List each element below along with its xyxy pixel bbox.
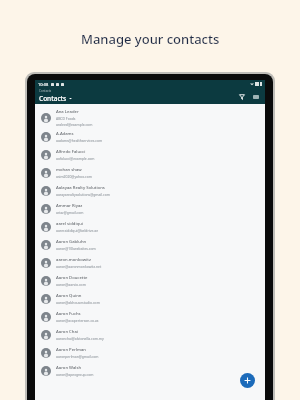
button[interactable]: Ammar Riyaz xyxy=(35,200,265,218)
staticText: Aaron Gabluhn xyxy=(56,239,87,245)
staticText: Aaron Walsh xyxy=(56,365,82,371)
staticText: aaron@apexgroup.com xyxy=(56,372,94,377)
button[interactable]: mohan shaw xyxy=(35,164,265,182)
button[interactable]: Alfredo Falucci xyxy=(35,146,265,164)
staticText: aaron@abhousestudio.com xyxy=(56,300,100,305)
button[interactable]: Aaron Perlman xyxy=(35,344,265,362)
staticText: araleed@example.com xyxy=(56,122,93,127)
staticText: Aaron Fuchs xyxy=(56,311,81,317)
staticText: Alfredo Falucci xyxy=(56,149,86,155)
staticText: Contacts xyxy=(39,89,52,93)
button[interactable]: Filter xyxy=(236,91,247,102)
staticText: aaron@acaperterson.co.za xyxy=(56,318,99,323)
staticText: aarer.siddiqui@beldrive.ae xyxy=(56,228,99,233)
staticText: Manage your contacts xyxy=(81,30,220,48)
button[interactable]: Aaron Fuchs xyxy=(35,308,265,326)
staticText: Ammar Riyaz xyxy=(56,203,83,209)
staticText: aaronchai@alstonella.com.my xyxy=(56,336,104,341)
staticText: aofalucci@example.com xyxy=(56,156,95,161)
staticText: ariaz@gmail.com xyxy=(56,210,84,215)
button[interactable]: A.Adams xyxy=(35,128,265,146)
staticText: aaron@aaronmonkowitz.net xyxy=(56,264,102,269)
staticText: Aaron Doucette xyxy=(56,275,88,281)
button[interactable]: Ana Leader xyxy=(35,107,265,128)
button[interactable]: Contacts xyxy=(39,89,236,103)
button[interactable]: Add contact xyxy=(240,373,255,388)
button[interactable]: Aaron Gabluhn xyxy=(35,236,265,254)
button[interactable]: aaron.monkowitz xyxy=(35,254,265,272)
staticText: aarayarealtysolutions@gmail.com xyxy=(56,192,110,197)
staticText: aadams@healthservices.com xyxy=(56,138,103,143)
staticText: 10:08 xyxy=(38,82,49,87)
staticText: Contacts xyxy=(39,94,67,103)
staticText: Aalayaa Realty Solutions xyxy=(56,185,105,191)
staticText: aaron@10kwebsites.com xyxy=(56,246,96,251)
button[interactable]: Aaron Doucette xyxy=(35,272,265,290)
staticText: asim2020@yahoo.com xyxy=(56,174,92,179)
staticText: Aaron Chai xyxy=(56,329,78,335)
staticText: mohan shaw xyxy=(56,167,82,173)
staticText: aaron.monkowitz xyxy=(56,257,91,263)
button[interactable]: Aaron Quinn xyxy=(35,290,265,308)
button[interactable]: Aaron Walsh xyxy=(35,362,265,380)
staticText: aaron@aarsio.com xyxy=(56,282,86,287)
button[interactable]: Aalayaa Realty Solutions xyxy=(35,182,265,200)
staticText: aaronperlman@gmail.com xyxy=(56,354,99,359)
button[interactable]: More options xyxy=(250,91,261,102)
staticText: Aaron Perlman xyxy=(56,347,86,353)
staticText: Aaron Quinn xyxy=(56,293,82,299)
staticText: ABCD Foods xyxy=(56,116,76,121)
staticText: A.Adams xyxy=(56,131,74,137)
staticText: aarel siddiqui xyxy=(56,221,83,227)
button[interactable]: aarel siddiqui xyxy=(35,218,265,236)
button[interactable]: Aaron Chai xyxy=(35,326,265,344)
staticText: Ana Leader xyxy=(56,109,79,115)
